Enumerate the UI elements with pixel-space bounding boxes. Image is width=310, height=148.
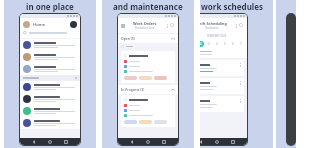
button[interactable]: Recents xyxy=(162,140,166,144)
button[interactable]: 3 xyxy=(206,41,212,47)
button[interactable] xyxy=(23,83,77,91)
button[interactable] xyxy=(23,95,77,103)
button[interactable] xyxy=(124,54,172,80)
button[interactable]: 2 xyxy=(200,41,204,47)
staticText: In Progress (3) xyxy=(121,87,145,92)
staticText: FEBRUARY 2020 xyxy=(207,34,227,38)
staticText: 7 xyxy=(240,42,242,46)
button[interactable] xyxy=(124,120,137,124)
staticText: Production Line xyxy=(135,26,155,30)
staticText: and maintenance xyxy=(113,1,183,12)
button[interactable] xyxy=(23,41,77,49)
staticText: 5 xyxy=(224,42,226,46)
button[interactable]: More options xyxy=(235,24,237,28)
button[interactable]: 6 xyxy=(230,41,236,47)
button[interactable] xyxy=(124,76,137,80)
button[interactable]: Recents xyxy=(231,140,235,144)
button[interactable] xyxy=(124,98,172,124)
staticText: Work Orders xyxy=(133,21,157,26)
button[interactable] xyxy=(23,107,77,115)
button[interactable]: More options xyxy=(166,24,168,28)
button[interactable]: Menu xyxy=(121,21,175,30)
button[interactable] xyxy=(139,120,152,124)
button[interactable]: Home xyxy=(215,140,219,144)
button[interactable] xyxy=(200,99,241,109)
button[interactable]: Open (5) xyxy=(121,36,175,41)
staticText: work schedules xyxy=(201,1,264,12)
button[interactable] xyxy=(154,76,167,80)
button[interactable] xyxy=(200,63,241,73)
staticText: in one place xyxy=(26,1,74,12)
button[interactable]: Home xyxy=(23,21,77,28)
button[interactable]: Home xyxy=(48,140,52,144)
button[interactable]: Back xyxy=(200,140,203,144)
button[interactable] xyxy=(154,120,167,124)
button[interactable]: Profile xyxy=(70,21,77,28)
button[interactable]: 5 xyxy=(222,41,228,47)
staticText: 6 xyxy=(232,42,234,46)
staticText: Shift Scheduling xyxy=(200,21,227,26)
button[interactable] xyxy=(23,65,77,73)
button[interactable]: 4 xyxy=(214,41,220,47)
button[interactable] xyxy=(200,81,241,91)
button[interactable]: Home xyxy=(146,140,150,144)
button[interactable]: Search xyxy=(170,23,175,28)
button[interactable] xyxy=(23,53,77,61)
staticText: 4 xyxy=(216,42,218,46)
button[interactable]: Shift Scheduling xyxy=(200,21,244,30)
staticText: 2 xyxy=(200,42,202,46)
button[interactable] xyxy=(139,76,152,80)
button[interactable]: Recents xyxy=(64,140,68,144)
staticText: Production xyxy=(205,26,219,30)
button[interactable]: 7 xyxy=(238,41,244,47)
button[interactable] xyxy=(23,31,77,35)
button[interactable]: Back xyxy=(32,140,36,144)
staticText: Open (5) xyxy=(121,36,135,41)
staticText: Home xyxy=(33,22,46,28)
staticText: 3 xyxy=(208,42,210,46)
button[interactable]: In Progress (3) xyxy=(121,87,175,92)
button[interactable]: Back xyxy=(130,140,134,144)
button[interactable]: Search xyxy=(239,23,244,28)
button[interactable] xyxy=(23,119,77,127)
